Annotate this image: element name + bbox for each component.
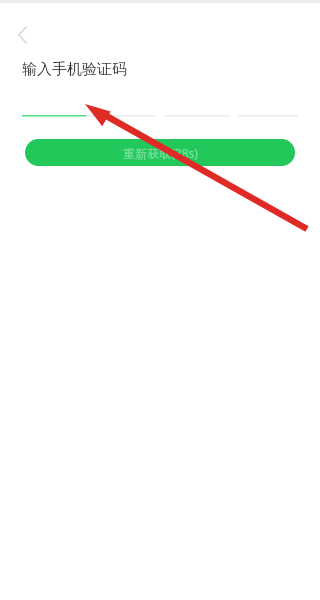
staticText: 重新获取(38s) — [123, 145, 198, 161]
button[interactable]: Verification code input — [22, 107, 298, 121]
button[interactable]: Back — [8, 22, 38, 48]
staticText: 输入手机验证码 — [22, 60, 127, 79]
button[interactable]: 重新获取(38s) — [25, 139, 295, 166]
